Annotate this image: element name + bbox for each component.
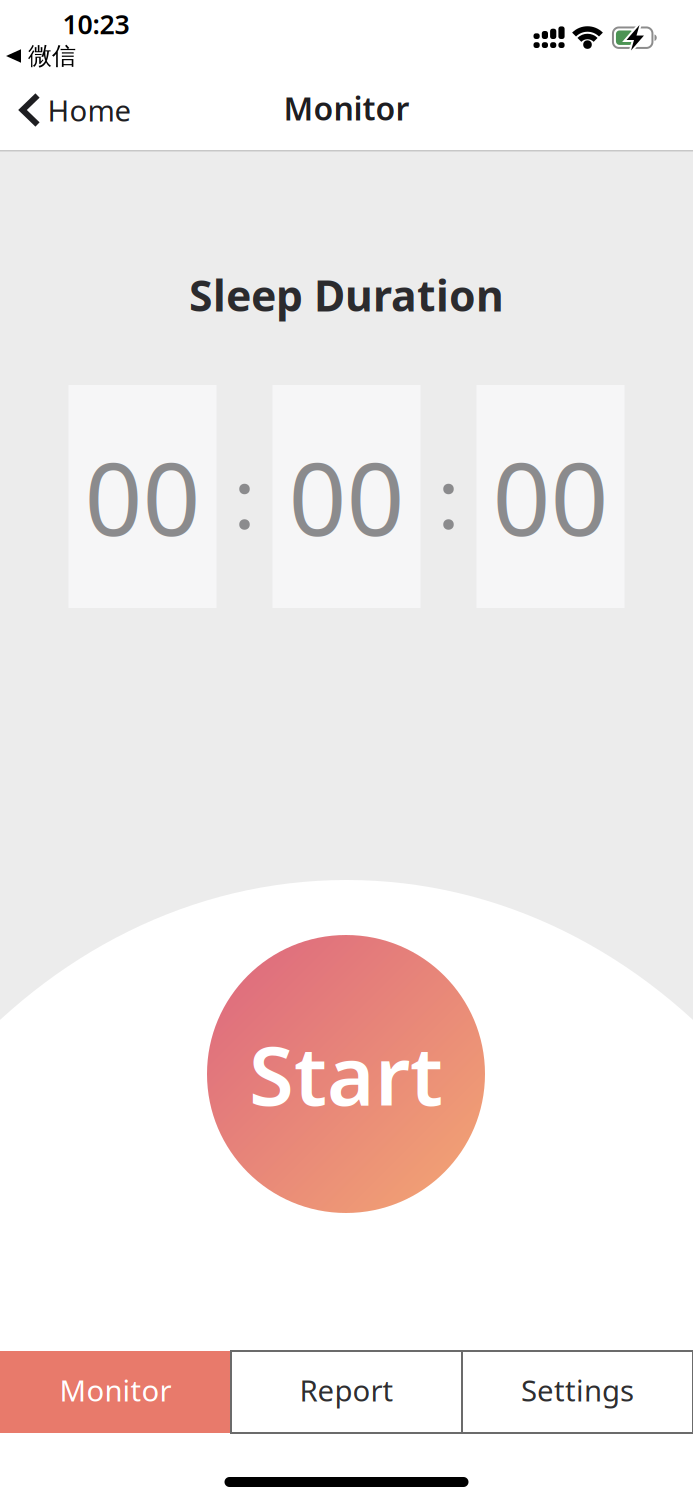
button[interactable]: Monitor xyxy=(0,1351,231,1433)
button[interactable]: Back to Home xyxy=(19,90,131,129)
staticText: Report xyxy=(299,1370,393,1409)
staticText: Start xyxy=(249,1020,443,1128)
button[interactable]: Settings xyxy=(462,1351,693,1433)
staticText: 00 xyxy=(84,429,200,564)
staticText: 00 xyxy=(288,429,404,564)
staticText: 10:23 xyxy=(62,6,129,42)
button[interactable]: Report xyxy=(231,1351,462,1433)
button[interactable]: Start xyxy=(207,935,485,1213)
staticText: 00 xyxy=(492,429,608,564)
staticText: Monitor xyxy=(283,87,409,129)
staticText: Home xyxy=(47,90,131,129)
staticText: 微信 xyxy=(28,41,76,71)
staticText: Monitor xyxy=(59,1370,171,1409)
staticText: Sleep Duration xyxy=(189,267,504,323)
staticText: Settings xyxy=(521,1370,634,1409)
button[interactable]: Back to 微信 xyxy=(6,41,76,71)
